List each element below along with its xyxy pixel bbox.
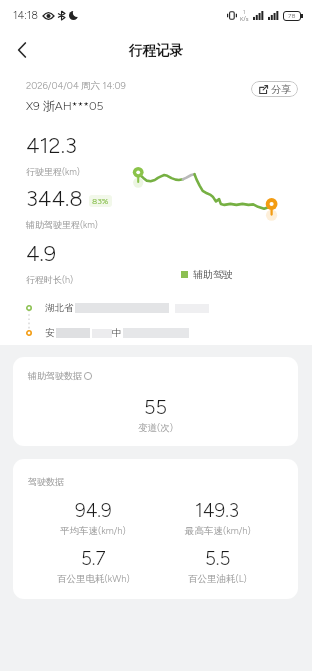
staticText: 55 [144, 395, 167, 419]
staticText: 行程记录 [129, 42, 183, 59]
staticText: 变道(次) [138, 422, 173, 434]
staticText: 14:18 [13, 9, 39, 22]
staticText: 行驶里程(km) [26, 166, 80, 177]
staticText: 83% [92, 196, 109, 206]
staticText: 1 [243, 9, 246, 15]
staticText: 5.7 [81, 547, 106, 570]
staticText: 行程时长(h) [26, 274, 74, 285]
staticText: 百公里电耗(kWh) [57, 573, 130, 585]
staticText: 2026/04/04 周六 14:09 [26, 80, 126, 92]
staticText: 辅助驾驶数据 [28, 370, 82, 381]
staticText: X9 浙AH***05 [26, 98, 104, 113]
button[interactable]: Back [9, 37, 35, 63]
staticText: 344.8 [26, 185, 83, 211]
staticText: 78 [288, 12, 296, 20]
staticText: 4.9 [26, 240, 57, 266]
staticText: 分享 [271, 83, 291, 96]
staticText: 中 [112, 327, 122, 339]
staticText: 辅助驾驶里程(km) [26, 219, 98, 230]
staticText: 412.3 [26, 132, 77, 158]
staticText: 辅助驾驶 [193, 268, 233, 281]
staticText: K/s [240, 15, 249, 22]
staticText: 94.9 [75, 499, 112, 522]
button[interactable]: 分享 [251, 81, 298, 97]
staticText: 平均车速(km/h) [60, 525, 126, 537]
staticText: 5.5 [205, 547, 231, 570]
staticText: 湖北省 [45, 302, 74, 314]
staticText: 驾驶数据 [28, 476, 64, 487]
staticText: 百公里油耗(L) [188, 573, 247, 585]
staticText: 最高车速(km/h) [185, 525, 251, 537]
staticText: 149.3 [195, 499, 240, 522]
staticText: 安 [45, 327, 55, 339]
